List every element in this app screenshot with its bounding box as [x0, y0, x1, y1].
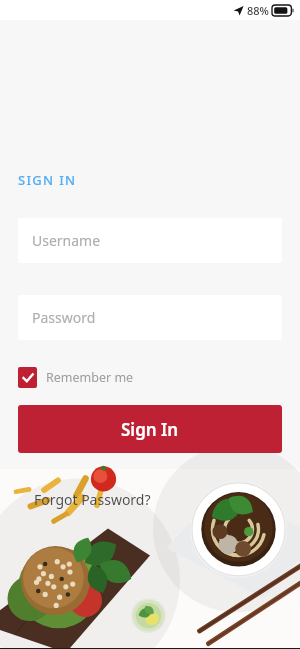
staticText: SIGN IN — [18, 171, 77, 189]
staticText: Sign In — [121, 418, 179, 441]
staticText: Username — [32, 231, 101, 250]
staticText: 88% — [247, 3, 269, 18]
button[interactable]: Password — [18, 295, 282, 340]
staticText: Forgot Password? — [34, 490, 151, 509]
button[interactable]: Username — [18, 218, 282, 263]
button[interactable]: Sign In — [18, 405, 282, 453]
button[interactable]: Remember me — [18, 367, 134, 388]
staticText: Password — [32, 308, 96, 327]
button[interactable]: Forgot Password? — [34, 490, 151, 509]
staticText: Remember me — [46, 369, 134, 386]
